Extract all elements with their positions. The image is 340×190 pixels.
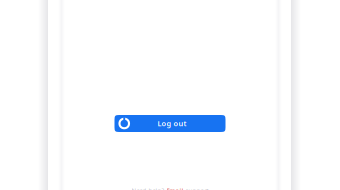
staticText: support (185, 186, 208, 190)
staticText: Log out (157, 118, 186, 128)
button[interactable]: Email (166, 186, 183, 190)
staticText: Email (166, 186, 183, 190)
button[interactable]: Log out (114, 115, 225, 132)
staticText: Need help? (131, 186, 164, 190)
